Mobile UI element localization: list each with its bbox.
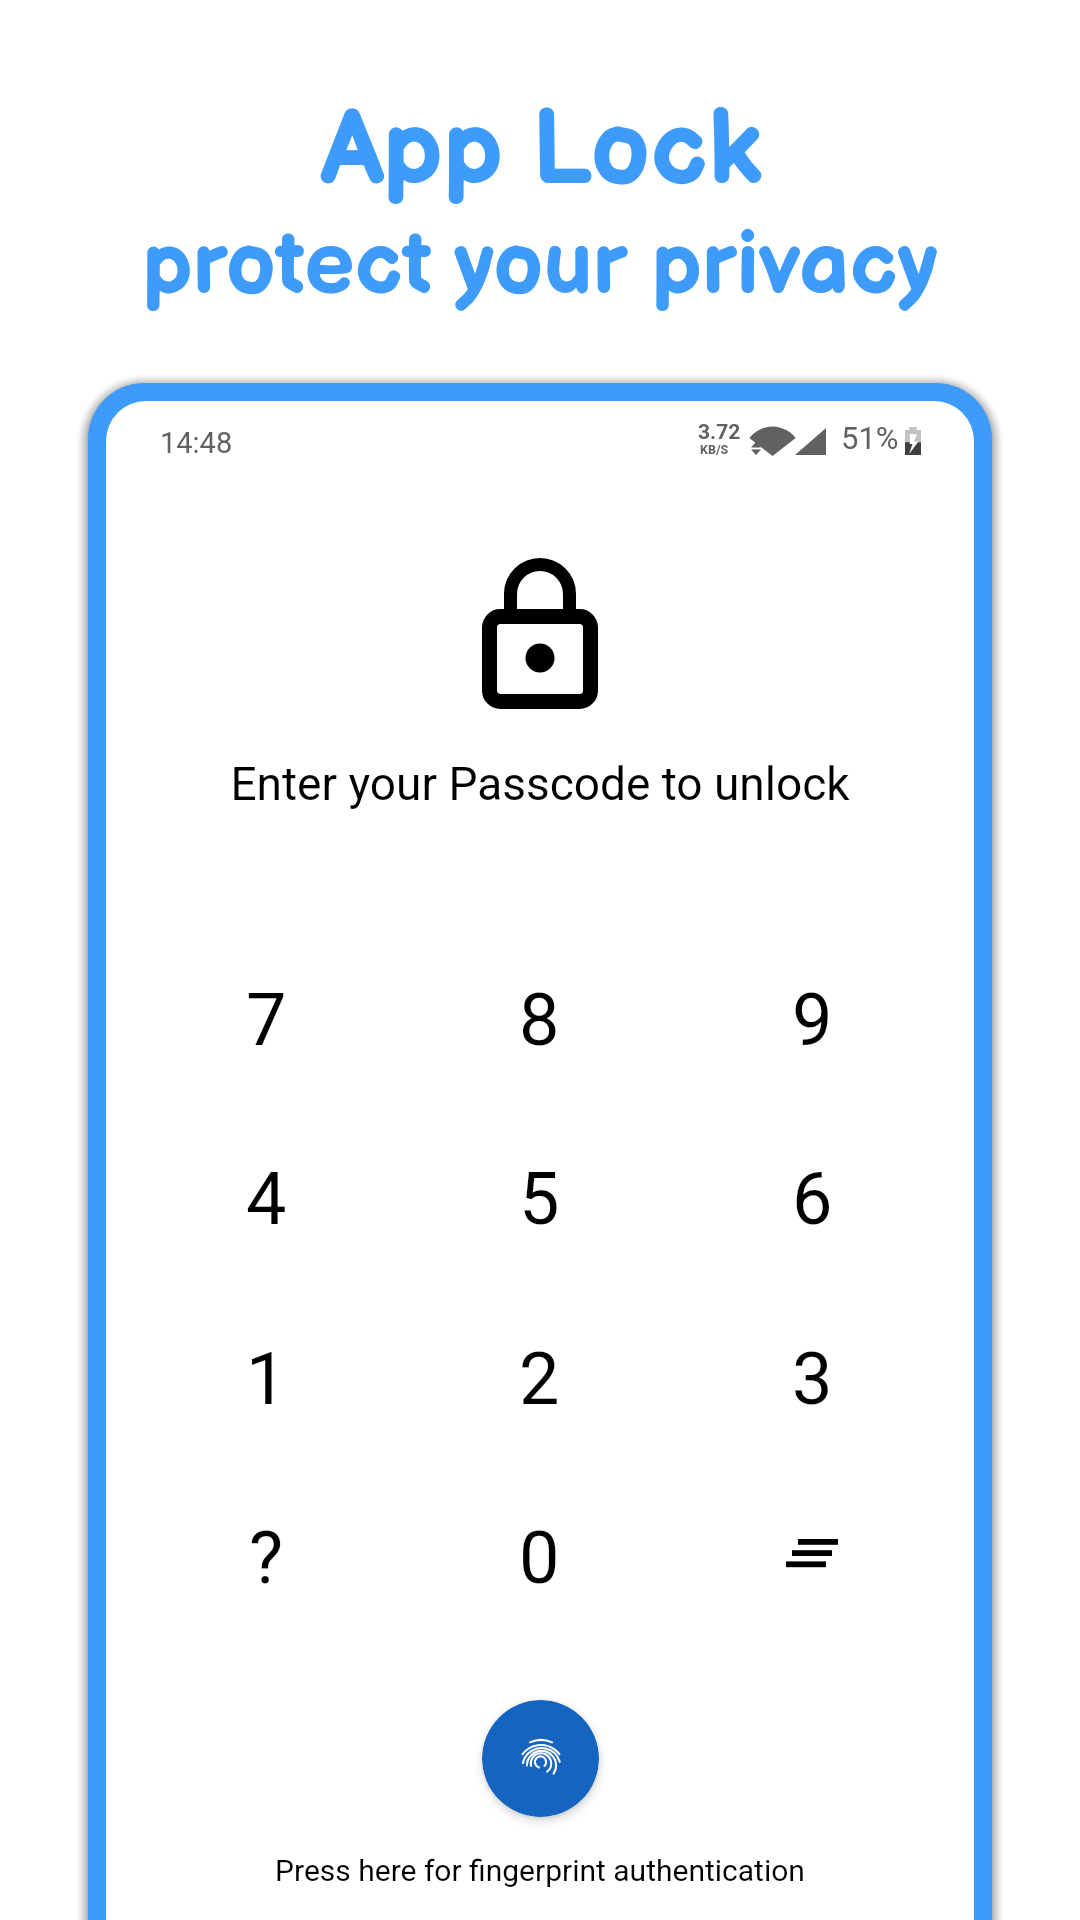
staticText: protect your privacy: [142, 214, 938, 320]
staticText: 8: [519, 978, 560, 1062]
staticText: 14:48: [160, 426, 233, 460]
button[interactable]: 6: [722, 1122, 902, 1252]
staticText: ?: [249, 1516, 284, 1600]
staticText: KB/S: [700, 442, 729, 457]
button[interactable]: 4: [176, 1122, 356, 1252]
button[interactable]: 3: [722, 1302, 902, 1432]
other: Locked: [482, 558, 598, 709]
staticText: App Lock: [320, 88, 763, 214]
button[interactable]: ?: [176, 1481, 356, 1611]
button[interactable]: 7: [176, 943, 356, 1073]
button[interactable]: 5: [449, 1122, 629, 1252]
staticText: Press here for fingerprint authenticatio…: [275, 1853, 805, 1888]
staticText: 2: [519, 1337, 560, 1421]
button[interactable]: 2: [449, 1302, 629, 1432]
staticText: 9: [792, 978, 833, 1062]
button[interactable]: Clear: [722, 1488, 902, 1618]
button[interactable]: 9: [722, 943, 902, 1073]
staticText: 1: [246, 1337, 287, 1421]
staticText: 0: [519, 1516, 560, 1600]
button[interactable]: 1: [176, 1302, 356, 1432]
staticText: 51%: [841, 420, 899, 456]
staticText: Enter your Passcode to unlock: [230, 757, 850, 811]
button[interactable]: 0: [449, 1481, 629, 1611]
button[interactable]: 8: [449, 943, 629, 1073]
staticText: 6: [792, 1157, 833, 1241]
button[interactable]: Fingerprint authentication: [482, 1700, 599, 1817]
staticText: 4: [246, 1157, 287, 1241]
staticText: 5: [519, 1157, 560, 1241]
staticText: 3.72: [698, 420, 741, 445]
staticText: 7: [246, 978, 287, 1062]
staticText: 3: [792, 1337, 833, 1421]
